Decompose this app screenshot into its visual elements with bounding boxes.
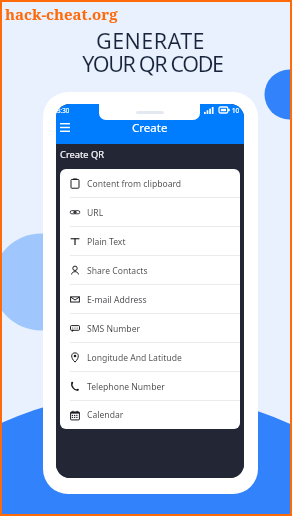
button[interactable]: URL (60, 198, 240, 227)
button[interactable]: Longitude And Latitude (60, 343, 240, 372)
staticText: Telephone Number (87, 381, 165, 393)
staticText: Longitude And Latitude (87, 352, 182, 364)
staticText: YOUR QR CODE (82, 49, 223, 78)
staticText: Plain Text (87, 236, 126, 248)
staticText: Share Contacts (87, 265, 148, 277)
button[interactable]: Content from clipboard (60, 169, 240, 198)
button[interactable]: Menu (56, 120, 74, 144)
staticText: GENERATE (96, 26, 205, 55)
button[interactable]: E-mail Address (60, 285, 240, 314)
staticText: E-mail Address (87, 294, 147, 306)
button[interactable]: Calendar (60, 401, 240, 429)
button[interactable]: SMS Number (60, 314, 240, 343)
staticText: 8:30 (57, 106, 70, 114)
staticText: Calendar (87, 409, 124, 421)
staticText: hack-cheat.org (5, 4, 118, 24)
staticText: URL (87, 207, 104, 219)
button[interactable]: Menu (56, 120, 244, 144)
staticText: Create (132, 120, 168, 136)
button[interactable]: Telephone Number (60, 372, 240, 401)
button[interactable]: Share Contacts (60, 256, 240, 285)
button[interactable]: Plain Text (60, 227, 240, 256)
staticText: SMS Number (87, 323, 141, 335)
staticText: Content from clipboard (87, 178, 182, 190)
staticText: 10 (232, 106, 240, 114)
staticText: Create QR (60, 148, 105, 161)
